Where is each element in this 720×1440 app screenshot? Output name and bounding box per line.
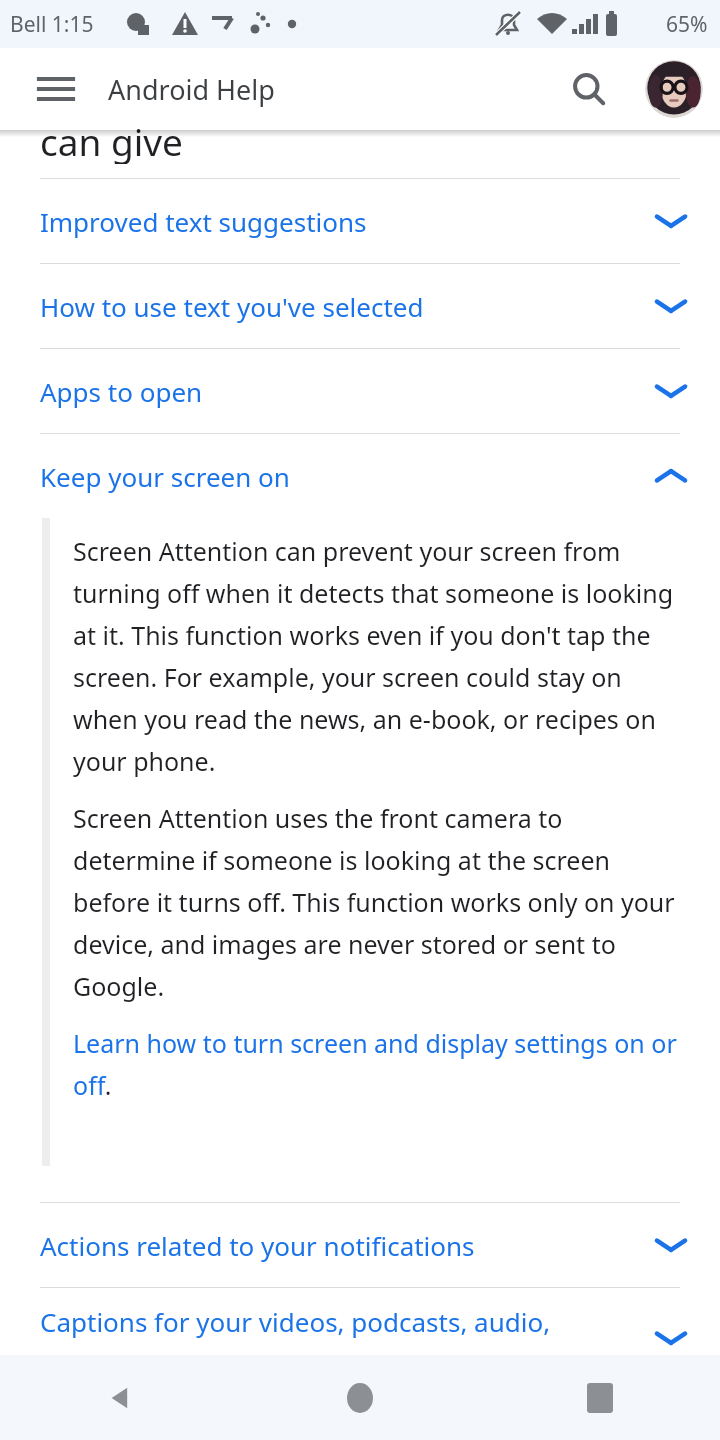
button[interactable]: Actions related to your notifications [0, 1203, 720, 1287]
staticText: Captions for your videos, podcasts, audi… [40, 1304, 650, 1339]
staticText: Learn how to turn screen and display set… [73, 1026, 684, 1102]
staticText: Bell 1:15 [10, 10, 94, 39]
button[interactable]: Open navigation menu [26, 59, 86, 119]
button[interactable]: Search [558, 58, 620, 120]
button[interactable]: How to use text you've selected [0, 264, 720, 348]
staticText: Android Help [108, 71, 275, 108]
staticText: Screen Attention can prevent your screen… [73, 534, 684, 778]
staticText: Improved text suggestions [40, 204, 656, 239]
staticText: Actions related to your notifications [40, 1228, 656, 1263]
button[interactable]: Recent apps [480, 1355, 720, 1440]
button[interactable]: Back [0, 1355, 240, 1440]
button[interactable]: Apps to open [0, 349, 720, 433]
button[interactable]: Keep your screen on [0, 434, 720, 518]
button[interactable]: Home [240, 1355, 480, 1440]
button[interactable]: Learn how to turn screen and display set… [73, 1026, 684, 1102]
button[interactable]: Google Account [645, 60, 703, 118]
staticText: Keep your screen on [40, 459, 656, 494]
staticText: How to use text you've selected [40, 289, 656, 324]
staticText: Screen Attention uses the front camera t… [73, 801, 684, 1003]
button[interactable]: Captions for your videos, podcasts, audi… [0, 1288, 720, 1355]
button[interactable]: Improved text suggestions [0, 179, 720, 263]
staticText: 65% [666, 10, 708, 39]
staticText: Apps to open [40, 374, 656, 409]
staticText: can give [40, 116, 183, 164]
